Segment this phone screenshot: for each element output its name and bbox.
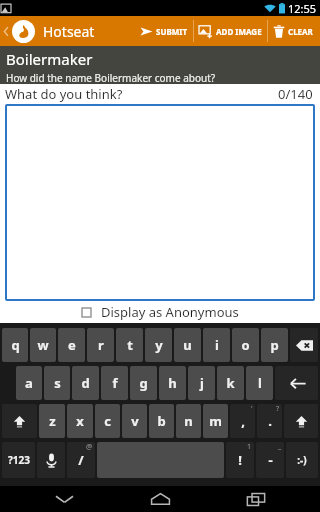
button[interactable]: l (246, 366, 273, 400)
staticText: _ (278, 442, 282, 452)
staticText: h (168, 374, 177, 392)
button[interactable]: Enter (275, 366, 318, 400)
staticText: m (209, 412, 222, 430)
button[interactable]: m (203, 404, 228, 438)
staticText: z (49, 412, 56, 430)
button[interactable]: a (16, 366, 42, 400)
button[interactable]: x (67, 404, 93, 438)
button[interactable]: , (230, 404, 255, 438)
button[interactable]: SUBMIT (135, 16, 193, 46)
button[interactable]: Voice input (37, 442, 65, 478)
button[interactable]: c (95, 404, 120, 438)
staticText: u (183, 336, 192, 354)
button[interactable]: e (58, 328, 85, 362)
staticText: y (155, 336, 163, 354)
staticText: w (37, 336, 49, 354)
staticText: p (270, 336, 279, 354)
button[interactable]: Hide keyboard (32, 486, 96, 512)
staticText: SUBMIT (156, 26, 188, 37)
staticText: s (54, 374, 61, 392)
staticText: x (76, 412, 84, 430)
button[interactable]: - (256, 442, 284, 478)
staticText: @ (86, 442, 93, 452)
button[interactable]: d (72, 366, 99, 400)
staticText: e (68, 336, 76, 354)
button[interactable]: r (87, 328, 114, 362)
button[interactable]: q (2, 328, 28, 362)
staticText: ? (276, 404, 280, 414)
button[interactable]: g (130, 366, 157, 400)
button[interactable]: :-) (286, 442, 318, 478)
staticText: ADD IMAGE (216, 26, 262, 37)
staticText: Boilermaker (6, 49, 93, 69)
staticText: c (104, 412, 111, 430)
button[interactable]: k (217, 366, 244, 400)
staticText: How did the name Boilermaker come about? (6, 71, 216, 84)
button[interactable]: Display as Anonymous (0, 301, 320, 323)
button[interactable]: u (174, 328, 201, 362)
staticText: o (241, 336, 250, 354)
button[interactable]: z (39, 404, 65, 438)
staticText: f (112, 374, 118, 392)
button[interactable]: v (122, 404, 147, 438)
staticText: :-) (297, 453, 307, 467)
staticText: k (226, 374, 235, 392)
staticText: What do you think? (5, 85, 123, 103)
staticText: v (131, 412, 139, 430)
staticText: ' (251, 404, 253, 414)
staticText: , (241, 412, 245, 430)
button[interactable]: w (30, 328, 56, 362)
staticText: i (215, 336, 219, 354)
button[interactable]: j (188, 366, 215, 400)
button[interactable]: Home (128, 486, 192, 512)
button[interactable]: b (149, 404, 174, 438)
staticText: n (184, 412, 193, 430)
staticText: 0/140 (278, 85, 313, 103)
button[interactable]: . (257, 404, 282, 438)
button[interactable]: y (145, 328, 172, 362)
staticText: r (98, 336, 104, 354)
staticText: g (139, 374, 148, 392)
staticText: - (268, 451, 273, 469)
staticText: a (25, 374, 33, 392)
button[interactable]: ADD IMAGE (194, 16, 267, 46)
staticText: 1 (247, 442, 252, 452)
button[interactable]: n (176, 404, 201, 438)
staticText: l (258, 374, 262, 392)
button[interactable]: Answer text field (5, 104, 315, 301)
staticText: ?123 (8, 453, 30, 467)
staticText: t (127, 336, 133, 354)
staticText: . (268, 412, 272, 430)
staticText: j (200, 374, 204, 392)
button[interactable]: Shift (2, 404, 37, 438)
button[interactable]: p (261, 328, 288, 362)
staticText: b (157, 412, 166, 430)
staticText: CLEAR (288, 26, 313, 37)
button[interactable]: t (116, 328, 143, 362)
button[interactable]: CLEAR (268, 16, 318, 46)
button[interactable]: i (203, 328, 230, 362)
button[interactable]: ?123 (2, 442, 35, 478)
button[interactable]: o (232, 328, 259, 362)
staticText: q (11, 336, 20, 354)
staticText: Hotseat (43, 22, 95, 41)
button[interactable]: Backspace (290, 328, 318, 362)
button[interactable]: Shift (284, 404, 318, 438)
button[interactable]: h (159, 366, 186, 400)
button[interactable]: s (44, 366, 70, 400)
staticText: / (78, 451, 84, 469)
button[interactable]: Recent apps (224, 486, 288, 512)
staticText: d (81, 374, 90, 392)
button[interactable]: ! (226, 442, 254, 478)
button[interactable]: Back to Hotseat (0, 16, 101, 46)
staticText: 12:55 (288, 1, 317, 16)
staticText: ! (238, 451, 242, 469)
button[interactable]: f (101, 366, 128, 400)
button[interactable]: / (67, 442, 95, 478)
staticText: Display as Anonymous (101, 303, 239, 321)
